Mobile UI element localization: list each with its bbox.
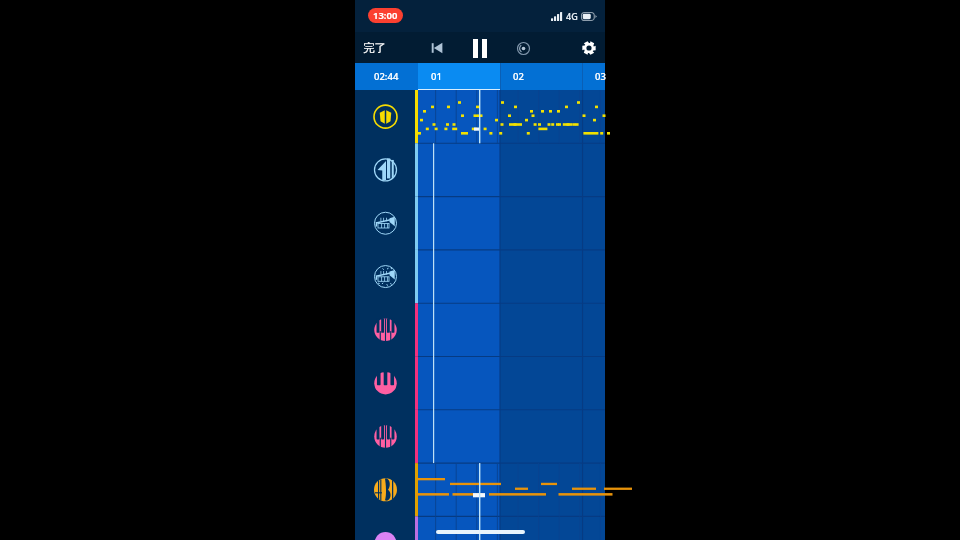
button[interactable]: [355, 90, 415, 143]
staticText: 完了: [363, 41, 386, 55]
staticText: 02: [513, 70, 524, 83]
button[interactable]: 完了: [355, 32, 407, 63]
button[interactable]: [355, 302, 415, 355]
button[interactable]: Pause: [465, 33, 495, 63]
button[interactable]: [355, 143, 415, 196]
button[interactable]: Metronome: [508, 33, 538, 63]
button[interactable]: [355, 249, 415, 302]
button[interactable]: [355, 355, 415, 408]
staticText: 03: [595, 70, 606, 83]
staticText: 01: [431, 70, 442, 83]
staticText: 13:00: [373, 9, 398, 22]
button[interactable]: [355, 461, 415, 514]
staticText: 02:44: [374, 70, 399, 83]
button[interactable]: [355, 514, 415, 540]
button[interactable]: Rewind: [422, 33, 452, 63]
button[interactable]: [355, 408, 415, 461]
button[interactable]: Settings: [574, 33, 604, 63]
staticText: 4G: [566, 10, 578, 22]
button[interactable]: [355, 196, 415, 249]
